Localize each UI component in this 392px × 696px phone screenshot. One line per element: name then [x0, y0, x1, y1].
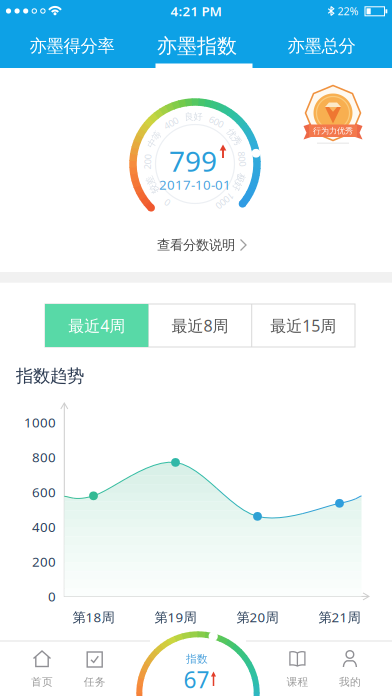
staticText: 最近8周: [171, 315, 228, 336]
staticText: 800: [32, 448, 56, 466]
staticText: 指数趋势: [16, 365, 84, 387]
staticText: 课程: [286, 675, 308, 688]
staticText: 400: [163, 117, 178, 129]
staticText: 最近15周: [270, 315, 336, 336]
staticText: 任务: [84, 675, 106, 688]
staticText: 799: [169, 142, 217, 180]
button[interactable]: 亦墨指数: [137, 28, 257, 64]
staticText: 较差: [143, 179, 161, 191]
staticText: 2017-10-01: [159, 176, 231, 193]
staticText: 良好: [184, 111, 202, 122]
button[interactable]: 最近4周: [45, 304, 148, 347]
staticText: 极好: [230, 176, 248, 188]
staticText: 中等: [145, 134, 163, 145]
staticText: 22%: [337, 4, 358, 18]
button[interactable]: 课程: [271, 644, 323, 694]
staticText: 0: [165, 196, 170, 209]
staticText: 600: [32, 483, 56, 501]
button[interactable]: 首页: [16, 644, 68, 694]
button[interactable]: 最近8周: [148, 304, 251, 347]
staticText: 400: [32, 518, 56, 536]
staticText: 亦墨指数: [157, 34, 237, 58]
staticText: 4:21 PM: [170, 2, 221, 20]
staticText: 200: [32, 553, 56, 570]
staticText: 1000: [215, 195, 235, 207]
staticText: 第19周: [154, 608, 196, 626]
staticText: 1000: [24, 413, 56, 431]
button[interactable]: 指数 67: [147, 647, 247, 696]
staticText: 第20周: [236, 608, 278, 626]
staticText: 亦墨得分率: [29, 35, 114, 57]
staticText: 我的: [339, 675, 361, 688]
staticText: 800: [235, 153, 250, 165]
staticText: 亦墨总分: [287, 35, 355, 57]
staticText: 第18周: [72, 608, 114, 626]
button[interactable]: 亦墨总分: [261, 28, 381, 64]
staticText: 优秀: [225, 131, 243, 143]
button[interactable]: 查看分数说明: [116, 231, 276, 259]
staticText: 行为力优秀: [313, 126, 353, 136]
button[interactable]: 我的: [324, 644, 376, 694]
staticText: 最近4周: [68, 315, 125, 336]
button[interactable]: 任务: [69, 644, 121, 694]
staticText: 查看分数说明: [157, 237, 235, 253]
staticText: 0: [48, 587, 56, 605]
button[interactable]: 亦墨得分率: [12, 28, 132, 64]
staticText: 600: [209, 115, 224, 128]
staticText: 首页: [31, 675, 53, 688]
staticText: 67: [183, 664, 209, 694]
staticText: 指数: [186, 652, 208, 665]
staticText: 200: [140, 156, 155, 168]
button[interactable]: 最近15周: [252, 304, 355, 347]
staticText: 第21周: [318, 608, 360, 626]
